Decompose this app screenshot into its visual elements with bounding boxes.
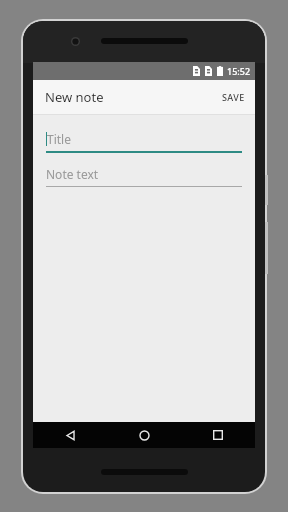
button[interactable]: Back	[33, 422, 107, 448]
button[interactable]: Title	[46, 130, 242, 153]
staticText: Title	[47, 131, 71, 147]
button[interactable]: Note text	[46, 165, 242, 187]
button[interactable]: SAVE	[212, 83, 255, 111]
button[interactable]: Recent apps	[181, 422, 255, 448]
button[interactable]: Home	[107, 422, 181, 448]
staticText: 15:52	[227, 65, 251, 77]
staticText: Note text	[46, 166, 99, 182]
staticText: SAVE	[222, 91, 245, 103]
staticText: New note	[45, 88, 104, 106]
